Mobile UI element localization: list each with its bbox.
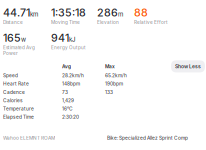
staticText: 73 xyxy=(62,89,68,95)
staticText: 133 xyxy=(105,89,113,95)
staticText: Max xyxy=(105,63,115,69)
staticText: 165 xyxy=(3,33,21,42)
staticText: 941 xyxy=(51,33,69,42)
staticText: Temperature xyxy=(3,106,34,112)
staticText: kJ xyxy=(69,37,76,42)
staticText: 2:30:20 xyxy=(62,114,79,120)
staticText: km xyxy=(30,11,38,17)
staticText: Calories xyxy=(3,97,23,103)
staticText: m xyxy=(118,11,123,17)
staticText: Bike: Specialized Allez Sprint Comp xyxy=(107,135,188,141)
staticText: 88 xyxy=(134,8,148,17)
staticText: 190bpm xyxy=(105,81,123,87)
button[interactable]: Wahoo ELEMNT ROAM xyxy=(3,135,107,141)
staticText: Avg xyxy=(62,63,71,69)
staticText: Relative Effort xyxy=(134,19,168,25)
staticText: 44.71 xyxy=(3,8,30,17)
staticText: 148bpm xyxy=(62,81,80,87)
staticText: 1:35:18 xyxy=(51,8,86,17)
staticText: Wahoo ELEMNT ROAM xyxy=(3,135,55,141)
staticText: Moving Time xyxy=(51,19,80,25)
staticText: Estimated Avg Power xyxy=(3,44,35,56)
staticText: 286 xyxy=(97,8,118,17)
staticText: 28.2km/h xyxy=(62,73,84,78)
staticText: w xyxy=(21,37,26,42)
staticText: Show Less xyxy=(175,63,201,69)
staticText: Distance xyxy=(3,19,23,25)
staticText: 1,429 xyxy=(62,97,74,103)
staticText: Elevation xyxy=(97,19,119,25)
staticText: Elapsed Time xyxy=(3,114,34,120)
staticText: Speed xyxy=(3,73,18,78)
staticText: 16°C xyxy=(62,106,73,112)
button[interactable]: Show Less xyxy=(171,60,205,72)
staticText: Energy Output xyxy=(51,44,86,50)
button[interactable]: Bike: Specialized Allez Sprint Comp xyxy=(107,135,188,141)
staticText: Heart Rate xyxy=(3,81,29,87)
staticText: 65.2km/h xyxy=(105,73,127,78)
staticText: Cadence xyxy=(3,89,25,95)
